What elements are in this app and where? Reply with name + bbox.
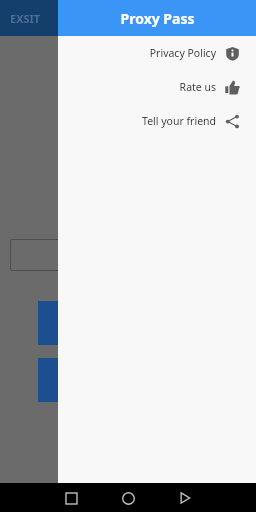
button[interactable]: Tell your friend (58, 104, 256, 138)
staticText: EXSIT (10, 11, 41, 26)
button[interactable]: Rate us (58, 70, 256, 104)
staticText: Proxy Pass (120, 9, 195, 28)
button[interactable]: Home (115, 485, 141, 511)
button[interactable]: Recent apps (58, 485, 84, 511)
staticText: Tell your friend (142, 114, 216, 128)
staticText: Privacy Policy (149, 46, 216, 60)
button[interactable]: Privacy Policy (58, 36, 256, 70)
staticText: Rate us (179, 80, 216, 94)
button[interactable]: Back (172, 485, 198, 511)
